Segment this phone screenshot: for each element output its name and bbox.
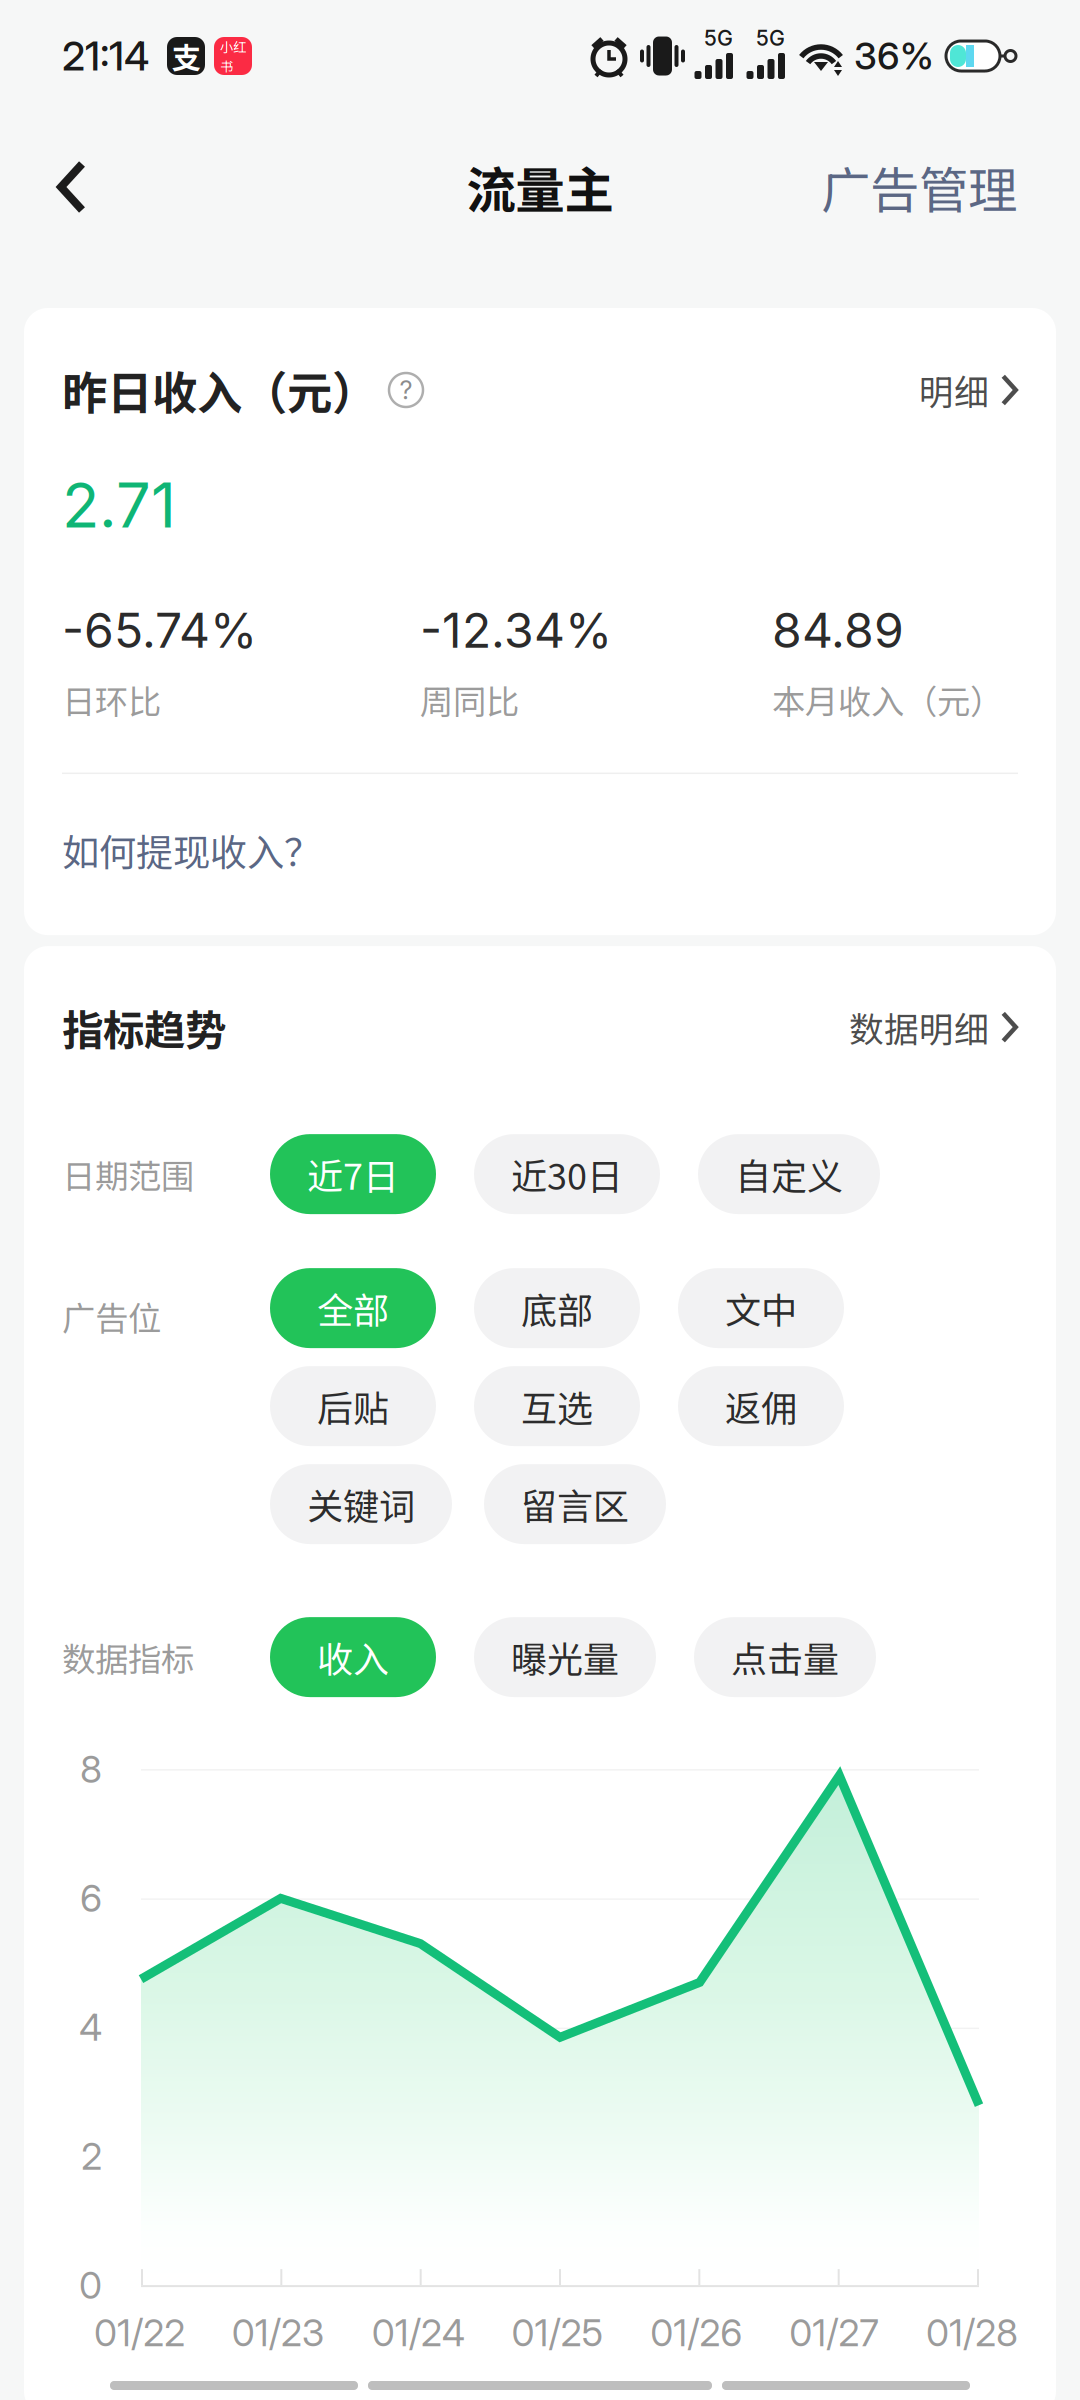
staticText: 后贴 [317, 1380, 389, 1432]
staticText: 01/27 [789, 2310, 879, 2355]
staticText: 数据明细 [849, 1002, 989, 1052]
button[interactable]: Back [28, 134, 116, 240]
staticText: 点击量 [731, 1631, 839, 1683]
staticText: 2 [81, 2133, 102, 2179]
staticText: 明细 [919, 365, 989, 415]
staticText: 全部 [317, 1282, 389, 1334]
staticText: 互选 [521, 1380, 593, 1432]
button[interactable]: 数据明细 [849, 1002, 1018, 1052]
staticText: 5G [704, 25, 733, 51]
button[interactable]: 文中 [678, 1268, 844, 1348]
staticText: 01/22 [94, 2310, 185, 2355]
button[interactable]: 关键词 [270, 1464, 452, 1544]
staticText: ? [399, 375, 412, 405]
staticText: 广告管理 [821, 151, 1017, 223]
staticText: 曝光量 [511, 1631, 619, 1683]
staticText: 0 [79, 2262, 102, 2308]
button[interactable]: 互选 [474, 1366, 640, 1446]
staticText: 关键词 [307, 1478, 415, 1530]
button[interactable]: 明细 [919, 365, 1018, 415]
button[interactable]: 收入 [270, 1617, 436, 1697]
staticText: 近7日 [307, 1148, 399, 1200]
button[interactable]: 自定义 [698, 1134, 880, 1214]
staticText: -65.74% [62, 601, 257, 659]
staticText: 日期范围 [62, 1150, 194, 1198]
button[interactable]: 广告管理 [799, 127, 1039, 247]
staticText: 36% [854, 33, 934, 79]
staticText: 01/23 [232, 2310, 325, 2355]
staticText: 留言区 [521, 1478, 629, 1530]
staticText: 6 [80, 1875, 102, 1921]
staticText: 小红书 [220, 37, 246, 75]
staticText: 支 [171, 35, 200, 77]
button[interactable]: 近7日 [270, 1134, 436, 1214]
staticText: 数据指标 [62, 1633, 194, 1681]
staticText: 周同比 [420, 675, 519, 724]
staticText: 指标趋势 [62, 997, 226, 1057]
staticText: -12.34% [420, 601, 612, 659]
staticText: 近30日 [511, 1148, 623, 1200]
staticText: 2.71 [62, 468, 176, 542]
button[interactable]: 底部 [474, 1268, 640, 1348]
staticText: 如何提现收入？ [62, 823, 321, 877]
button[interactable]: 近30日 [474, 1134, 660, 1214]
staticText: 84.89 [772, 601, 904, 659]
staticText: 日环比 [62, 675, 161, 724]
button[interactable]: 返佣 [678, 1366, 844, 1446]
staticText: 21:14 [62, 32, 149, 80]
staticText: 自定义 [735, 1148, 843, 1200]
button[interactable]: Help [389, 373, 423, 407]
button[interactable]: 全部 [270, 1268, 436, 1348]
staticText: 流量主 [466, 151, 613, 223]
staticText: 文中 [725, 1282, 797, 1334]
staticText: 01/26 [650, 2310, 742, 2355]
staticText: 01/28 [926, 2310, 1018, 2355]
staticText: 昨日收入（元） [62, 357, 377, 423]
button[interactable]: 如何提现收入？ [62, 823, 321, 877]
staticText: 4 [79, 2004, 102, 2050]
button[interactable]: 曝光量 [474, 1617, 656, 1697]
button[interactable]: 留言区 [484, 1464, 666, 1544]
staticText: 8 [80, 1746, 102, 1792]
staticText: 本月收入（元） [772, 675, 1003, 724]
button[interactable]: 点击量 [694, 1617, 876, 1697]
staticText: 01/24 [372, 2310, 465, 2355]
staticText: 01/25 [511, 2310, 603, 2355]
staticText: 广告位 [62, 1292, 161, 1340]
button[interactable]: 后贴 [270, 1366, 436, 1446]
staticText: 底部 [521, 1282, 593, 1334]
staticText: 5G [756, 25, 785, 51]
staticText: 返佣 [725, 1380, 797, 1432]
staticText: 收入 [317, 1631, 389, 1683]
